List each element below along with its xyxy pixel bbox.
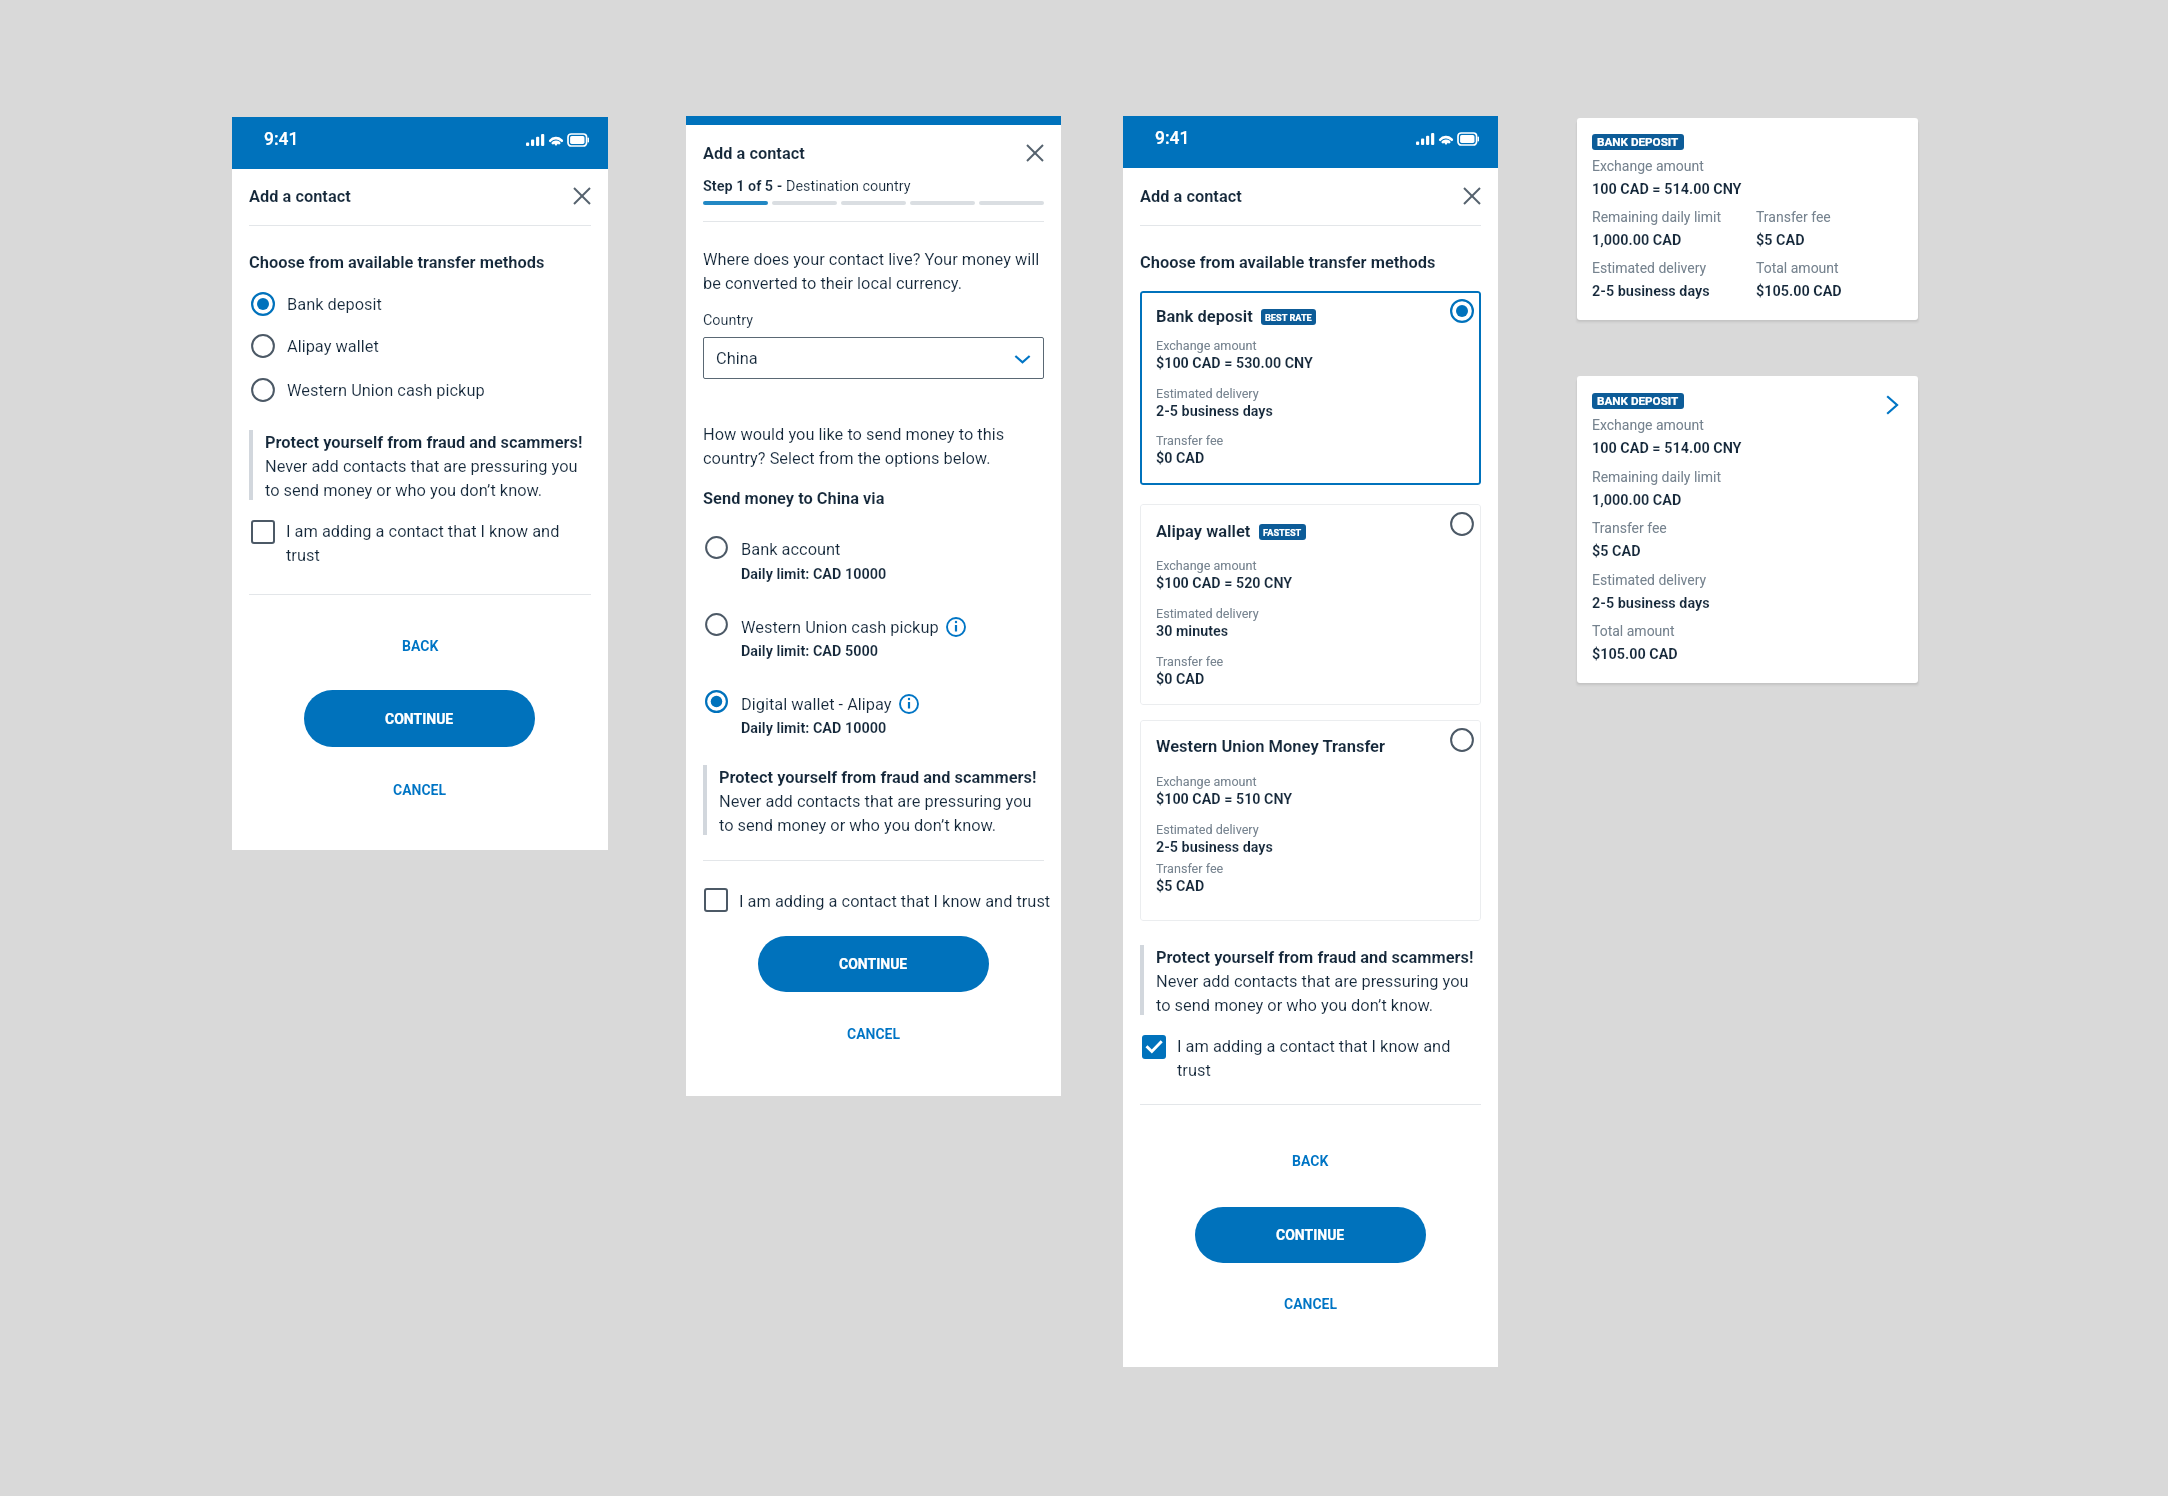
staticText: FASTEST [1263, 527, 1302, 538]
button[interactable]: CONTINUE [304, 690, 535, 747]
button[interactable]: Alipay wallet [251, 334, 591, 358]
staticText: Estimated delivery [1592, 572, 1707, 588]
staticText: $100 CAD = 510 CNY [1156, 791, 1293, 808]
staticText: 2-5 business days [1156, 839, 1273, 856]
staticText: CANCEL [1284, 1296, 1338, 1312]
button[interactable]: China [703, 337, 1044, 379]
staticText: $5 CAD [1156, 878, 1205, 895]
staticText: Estimated delivery [1156, 822, 1259, 837]
button[interactable]: Western Union cash pickup [705, 613, 1044, 659]
button[interactable]: BACK [1140, 1149, 1481, 1173]
staticText: How would you like to send money to this… [703, 425, 1005, 468]
staticText: BACK [402, 638, 439, 654]
staticText: 9:41 [1155, 128, 1190, 149]
staticText: Remaining daily limit [1592, 469, 1722, 485]
button[interactable]: BANK DEPOSIT [1577, 376, 1918, 683]
staticText: Protect yourself from fraud and scammers… [1156, 948, 1474, 967]
staticText: Daily limit: CAD 10000 [741, 566, 887, 583]
staticText: BANK DEPOSIT [1597, 394, 1679, 408]
staticText: Exchange amount [1156, 558, 1257, 573]
staticText: $100 CAD = 520 CNY [1156, 575, 1293, 592]
staticText: Where does your contact live? Your money… [703, 250, 1040, 293]
button[interactable]: Alipay wallet [1140, 504, 1481, 705]
button[interactable]: I am adding a contact that I know and tr… [704, 888, 1044, 914]
staticText: 9:41 [264, 129, 299, 150]
button[interactable]: I am adding a contact that I know and tr… [1142, 1035, 1481, 1085]
staticText: Add a contact [1140, 187, 1242, 206]
button[interactable]: CONTINUE [758, 936, 989, 992]
staticText: $5 CAD [1756, 232, 1805, 249]
button[interactable]: CONTINUE [1195, 1207, 1426, 1263]
button[interactable]: View details [1882, 395, 1902, 415]
staticText: Protect yourself from fraud and scammers… [265, 433, 583, 452]
staticText: CONTINUE [385, 711, 454, 727]
staticText: Estimated delivery [1156, 386, 1259, 401]
staticText: 30 minutes [1156, 623, 1229, 640]
staticText: $0 CAD [1156, 671, 1205, 688]
staticText: Exchange amount [1592, 158, 1704, 174]
staticText: Choose from available transfer methods [1140, 253, 1436, 272]
button[interactable]: More information [899, 694, 919, 714]
staticText: CONTINUE [1276, 1227, 1345, 1243]
button[interactable]: Western Union Money Transfer [1140, 720, 1481, 921]
button[interactable]: Close [1463, 187, 1481, 205]
staticText: Choose from available transfer methods [249, 253, 545, 272]
staticText: Never add contacts that are pressuring y… [265, 457, 578, 500]
staticText: Never add contacts that are pressuring y… [1156, 972, 1469, 1015]
staticText: Bank deposit [287, 295, 382, 314]
staticText: Step 1 of 5 - [703, 178, 786, 195]
staticText: Western Union cash pickup [287, 381, 485, 400]
button[interactable]: CANCEL [703, 1022, 1044, 1046]
staticText: Transfer fee [1156, 433, 1224, 448]
staticText: 1,000.00 CAD [1592, 492, 1682, 509]
button[interactable]: More information [946, 617, 966, 637]
button[interactable]: BACK [249, 634, 591, 658]
staticText: BEST RATE [1265, 312, 1312, 323]
staticText: Estimated delivery [1156, 606, 1259, 621]
staticText: Bank account [741, 540, 841, 559]
staticText: Alipay wallet [1156, 522, 1251, 541]
button[interactable]: CANCEL [1140, 1292, 1481, 1316]
button[interactable]: CANCEL [249, 778, 591, 802]
staticText: Total amount [1592, 623, 1675, 639]
staticText: 100 CAD = 514.00 CNY [1592, 440, 1742, 457]
staticText: I am adding a contact that I know and tr… [1177, 1037, 1489, 1080]
staticText: Digital wallet - Alipay [741, 695, 892, 714]
button[interactable]: Bank deposit [1140, 291, 1481, 485]
staticText: CANCEL [393, 782, 447, 798]
staticText: Transfer fee [1156, 654, 1224, 669]
staticText: Add a contact [703, 144, 805, 163]
staticText: $5 CAD [1592, 543, 1641, 560]
staticText: BANK DEPOSIT [1597, 135, 1679, 149]
staticText: 2-5 business days [1592, 595, 1710, 612]
staticText: CONTINUE [839, 956, 908, 972]
staticText: Send money to China via [703, 489, 885, 508]
staticText: 2-5 business days [1592, 283, 1710, 300]
button[interactable]: I am adding a contact that I know and tr… [251, 520, 591, 570]
staticText: Daily limit: CAD 5000 [741, 643, 878, 660]
staticText: 100 CAD = 514.00 CNY [1592, 181, 1742, 198]
staticText: Protect yourself from fraud and scammers… [719, 768, 1037, 787]
button[interactable]: BANK DEPOSIT [1577, 118, 1918, 320]
button[interactable]: Western Union cash pickup [251, 378, 591, 402]
staticText: Add a contact [249, 187, 351, 206]
staticText: Total amount [1756, 260, 1839, 276]
staticText: Exchange amount [1156, 338, 1257, 353]
staticText: Transfer fee [1592, 520, 1667, 536]
button[interactable]: Bank deposit [251, 292, 591, 316]
staticText: 2-5 business days [1156, 403, 1273, 420]
staticText: Remaining daily limit [1592, 209, 1722, 225]
button[interactable]: Digital wallet - Alipay [705, 690, 1044, 736]
staticText: Exchange amount [1156, 774, 1257, 789]
button[interactable]: Close [573, 187, 591, 205]
button[interactable]: Bank account [705, 536, 1044, 582]
staticText: Country [703, 312, 753, 329]
staticText: China [716, 349, 1012, 368]
staticText: 1,000.00 CAD [1592, 232, 1682, 249]
button[interactable]: Close [1026, 144, 1044, 162]
staticText: Transfer fee [1756, 209, 1831, 225]
staticText: Daily limit: CAD 10000 [741, 720, 887, 737]
staticText: Bank deposit [1156, 307, 1253, 326]
staticText: CANCEL [847, 1026, 901, 1042]
staticText: Exchange amount [1592, 417, 1704, 433]
